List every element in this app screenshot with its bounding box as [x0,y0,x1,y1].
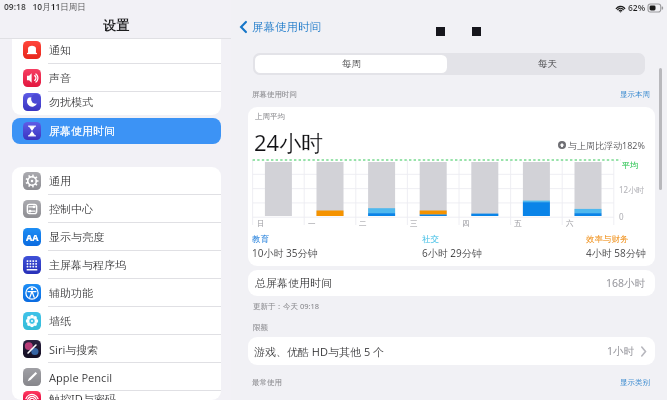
button[interactable]: 屏幕使用时间 [12,118,221,144]
staticText: 与上周比浮动182% [568,139,645,151]
staticText: 社交 [422,234,439,245]
staticText: Apple Pencil [49,370,113,385]
staticText: 效率与财务 [586,234,629,245]
staticText: 屏幕使用时间 [252,90,297,99]
staticText: 10小时 35分钟 [252,246,318,260]
staticText: 四 [462,219,470,228]
staticText: 6小时 29分钟 [422,246,482,260]
staticText: 4小时 58分钟 [586,246,646,260]
button[interactable]: 声音 [12,64,221,92]
staticText: 声音 [49,71,71,85]
button[interactable]: 墙纸 [12,307,221,335]
staticText: 墙纸 [49,314,71,328]
staticText: 六 [566,219,574,228]
button[interactable]: 通用 [12,167,221,195]
staticText: 上周平均 [255,112,285,121]
button[interactable]: 返回 [240,20,321,34]
button[interactable]: AA [12,223,221,251]
button[interactable]: 显示本周 [620,90,650,99]
staticText: 1小时 [607,344,635,358]
staticText: 三 [410,219,418,228]
button[interactable]: 每天 [449,53,645,75]
staticText: 辅助功能 [49,286,93,300]
staticText: 五 [514,219,522,228]
staticText: 24小时 [254,127,324,157]
staticText: 每天 [538,58,557,70]
staticText: 通用 [49,174,71,188]
staticText: 设置 [103,17,129,33]
staticText: Siri与搜索 [49,342,99,357]
staticText: 一 [308,219,316,228]
button[interactable]: 触控ID与密码 [12,391,221,400]
staticText: 最常使用 [252,378,282,387]
staticText: 二 [359,219,367,228]
button[interactable]: 总屏幕使用时间 [248,270,655,296]
button[interactable]: 辅助功能 [12,279,221,307]
staticText: AA [26,231,39,243]
staticText: 每周 [342,58,361,70]
button[interactable]: 主屏幕与程序坞 [12,251,221,279]
staticText: 更新于：今天 09:18 [253,301,320,311]
button[interactable]: 控制中心 [12,195,221,223]
staticText: 12小时 [619,184,645,195]
staticText: 屏幕使用时间 [49,124,115,138]
staticText: 教育 [252,234,269,245]
button[interactable]: 通知 [12,39,221,64]
button[interactable]: Apple Pencil [12,363,221,391]
staticText: 平均 [622,160,638,170]
button[interactable]: 每周 [255,55,447,73]
button[interactable]: 显示类别 [620,378,650,387]
button[interactable]: 勿扰模式 [12,92,221,112]
staticText: 显示与亮度 [49,230,104,244]
staticText: 限额 [253,323,268,332]
staticText: 09:18 10月11日周日 [4,1,86,13]
staticText: 日 [257,219,265,228]
staticText: 游戏、优酷 HD与其他 5 个 [254,344,385,359]
staticText: 总屏幕使用时间 [255,276,332,290]
button[interactable]: Siri与搜索 [12,335,221,363]
staticText: 控制中心 [49,202,93,216]
staticText: 168小时 [606,276,646,290]
staticText: 62% [628,2,646,14]
staticText: 通知 [49,43,71,57]
staticText: 勿扰模式 [49,95,93,109]
staticText: 屏幕使用时间 [252,20,321,34]
staticText: 触控ID与密码 [49,391,116,400]
staticText: 主屏幕与程序坞 [49,258,126,272]
staticText: 0 [619,211,624,222]
button[interactable]: 游戏、优酷 HD与其他 5 个 [248,337,655,365]
